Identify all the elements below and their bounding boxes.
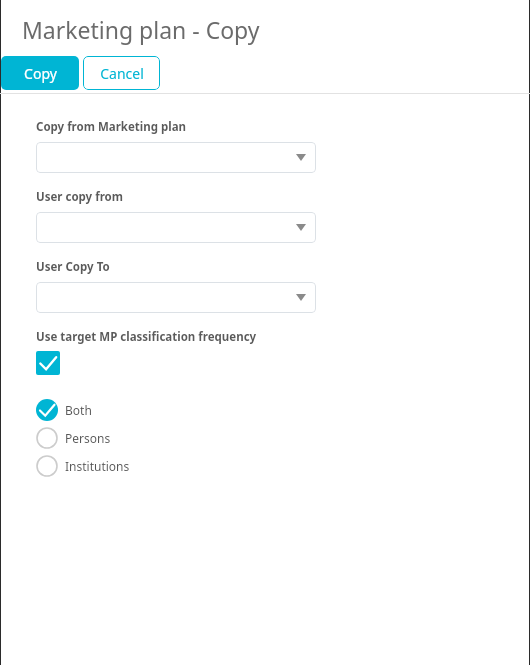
button[interactable]: Institutions xyxy=(36,453,130,478)
staticText: Copy xyxy=(24,64,57,83)
button[interactable]: Open dropdown xyxy=(36,282,316,313)
button[interactable]: Open dropdown xyxy=(36,212,316,243)
staticText: Use target MP classification frequency xyxy=(36,329,257,345)
staticText: Copy from Marketing plan xyxy=(36,119,187,135)
staticText: Cancel xyxy=(100,64,144,83)
button[interactable]: Use target MP classification frequency xyxy=(36,351,60,375)
staticText: Institutions xyxy=(65,458,130,474)
button[interactable]: Persons xyxy=(36,425,111,450)
staticText: User Copy To xyxy=(36,259,110,275)
staticText: Marketing plan - Copy xyxy=(22,14,260,45)
button[interactable]: Copy xyxy=(1,56,79,90)
staticText: Persons xyxy=(65,430,111,446)
button[interactable]: Open dropdown xyxy=(36,142,316,173)
staticText: Both xyxy=(65,402,92,418)
button[interactable]: Cancel xyxy=(83,56,160,90)
staticText: User copy from xyxy=(36,189,123,205)
button[interactable]: Both xyxy=(36,397,92,422)
